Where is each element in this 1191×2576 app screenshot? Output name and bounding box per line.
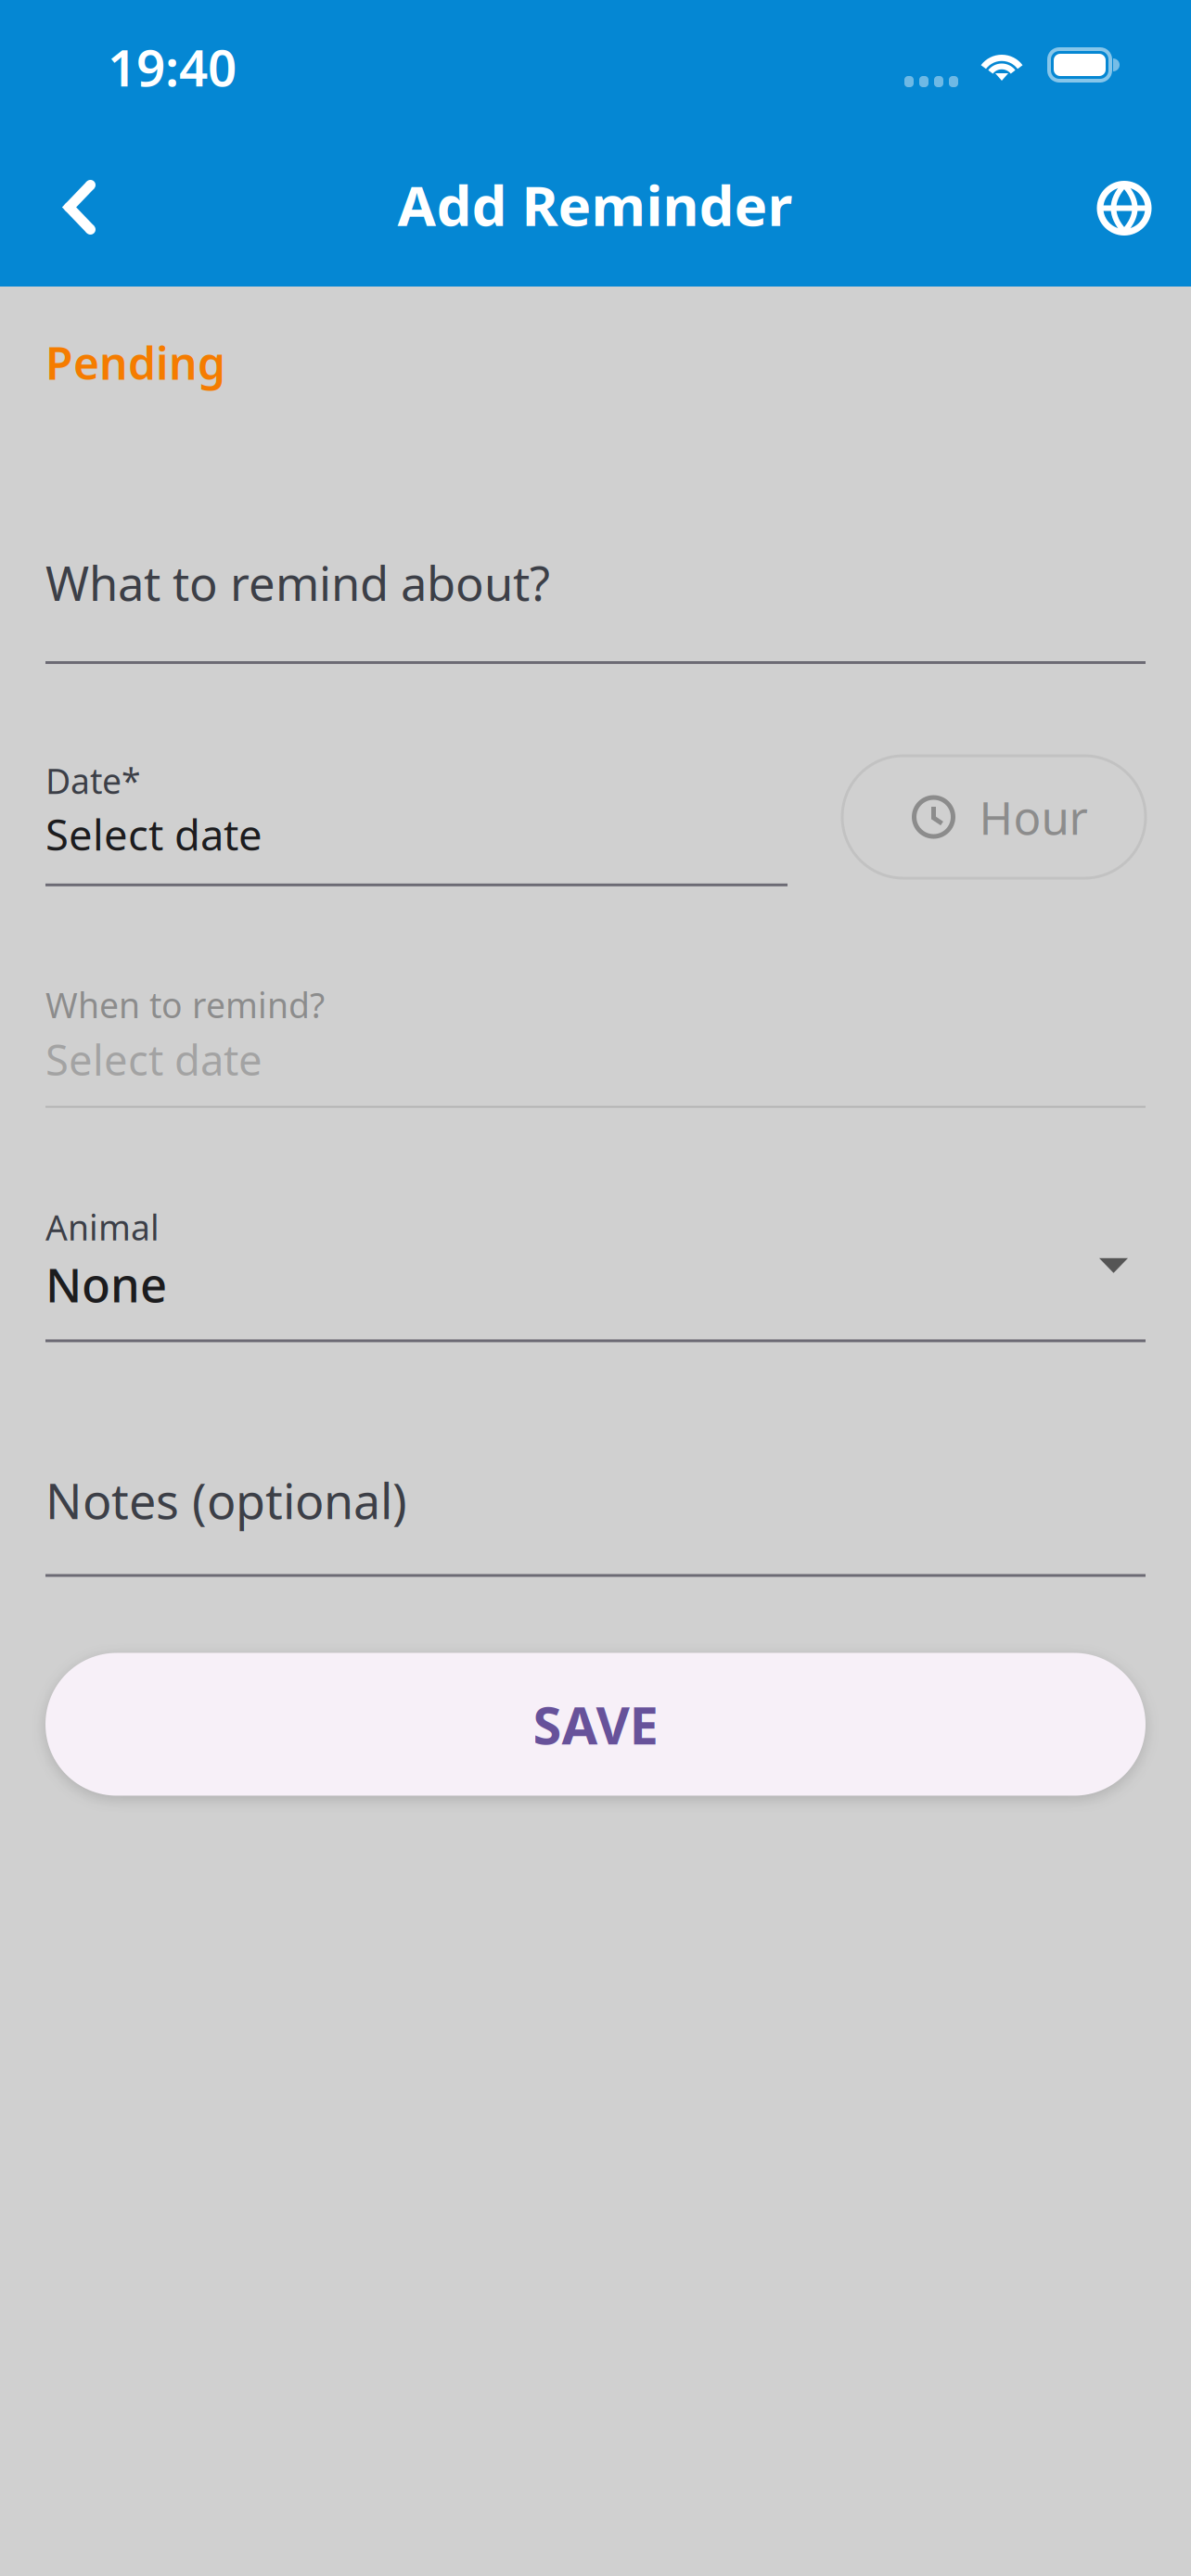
staticText: 19:40 [108, 33, 237, 100]
button[interactable]: What to remind about? [45, 551, 1146, 664]
button[interactable]: SAVE [45, 1653, 1146, 1796]
button[interactable]: Notes (optional) [45, 1468, 1146, 1577]
staticText: SAVE [533, 1690, 658, 1759]
staticText: Select date [45, 806, 263, 862]
button[interactable]: Date* [45, 758, 788, 886]
button[interactable]: Back [23, 145, 131, 264]
staticText: Hour [979, 787, 1088, 847]
staticText: Notes (optional) [45, 1468, 407, 1532]
staticText: Select date [45, 1032, 263, 1087]
staticText: When to remind? [45, 982, 325, 1028]
staticText: Pending [45, 333, 225, 392]
staticText: None [45, 1253, 167, 1315]
button[interactable]: Hour [842, 756, 1146, 878]
staticText: Animal [45, 1204, 160, 1250]
staticText: Date* [45, 758, 141, 804]
button[interactable]: Animal [45, 1204, 1146, 1342]
staticText: Add Reminder [397, 168, 793, 241]
staticText: What to remind about? [45, 551, 550, 614]
button[interactable]: Language [1059, 145, 1167, 264]
